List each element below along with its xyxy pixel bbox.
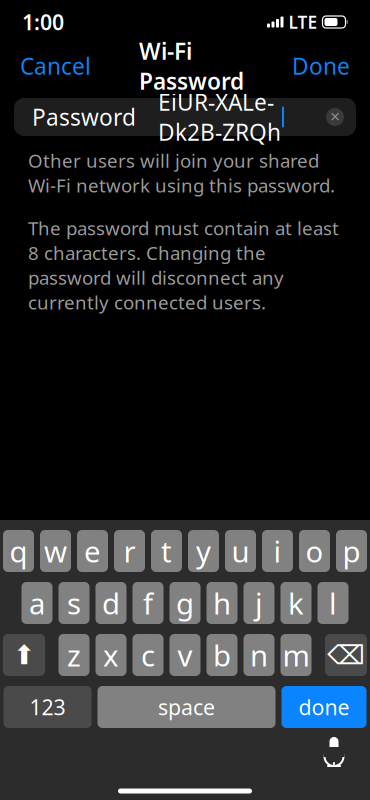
button[interactable]: k: [280, 582, 311, 624]
button[interactable]: d: [95, 582, 126, 624]
button[interactable]: z: [58, 634, 89, 676]
button[interactable]: y: [188, 530, 219, 572]
staticText: z: [67, 635, 81, 674]
button[interactable]: f: [132, 582, 163, 624]
button[interactable]: h: [206, 582, 237, 624]
staticText: The password must contain at least 8 cha…: [28, 216, 339, 315]
staticText: ⌫: [327, 640, 365, 670]
button[interactable]: 123: [3, 686, 91, 728]
staticText: t: [161, 531, 172, 570]
button[interactable]: done: [281, 686, 366, 728]
staticText: u: [231, 531, 249, 570]
staticText: y: [196, 531, 211, 570]
button[interactable]: q: [3, 530, 34, 572]
staticText: m: [282, 635, 309, 674]
staticText: Done: [292, 51, 350, 81]
staticText: k: [288, 583, 304, 622]
button[interactable]: m: [280, 634, 311, 676]
button[interactable]: s: [58, 582, 89, 624]
button[interactable]: l: [317, 582, 348, 624]
staticText: e: [84, 531, 101, 570]
staticText: c: [141, 635, 155, 674]
staticText: ✕: [329, 109, 340, 124]
staticText: q: [9, 531, 27, 570]
staticText: v: [177, 635, 192, 674]
staticText: space: [158, 693, 215, 721]
staticText: LTE: [288, 10, 317, 33]
staticText: ⬆: [13, 640, 35, 670]
button[interactable]: Shift: [3, 634, 45, 676]
staticText: 123: [29, 693, 65, 721]
staticText: Password: [32, 102, 136, 132]
staticText: Wi-Fi Password: [139, 36, 244, 96]
staticText: p: [342, 531, 360, 570]
button[interactable]: w: [40, 530, 71, 572]
staticText: f: [143, 583, 153, 622]
button[interactable]: x: [95, 634, 126, 676]
button[interactable]: c: [132, 634, 163, 676]
staticText: EiUR-XALe-Dk2B-ZRQh: [158, 87, 281, 147]
button[interactable]: Delete: [325, 634, 367, 676]
button[interactable]: Done: [276, 43, 366, 89]
staticText: 1:00: [22, 8, 64, 36]
staticText: g: [176, 583, 194, 622]
button[interactable]: Cancel: [4, 43, 107, 89]
staticText: d: [102, 583, 120, 622]
staticText: x: [103, 635, 119, 674]
button[interactable]: i: [262, 530, 293, 572]
button[interactable]: p: [336, 530, 367, 572]
button[interactable]: space: [97, 686, 275, 728]
staticText: done: [298, 693, 349, 721]
staticText: i: [273, 531, 281, 570]
staticText: o: [305, 531, 323, 570]
button[interactable]: n: [243, 634, 274, 676]
staticText: r: [123, 531, 135, 570]
staticText: Cancel: [20, 51, 91, 81]
button[interactable]: r: [114, 530, 145, 572]
staticText: l: [329, 583, 337, 622]
button[interactable]: Clear text: [320, 102, 350, 132]
staticText: s: [67, 583, 81, 622]
button[interactable]: e: [77, 530, 108, 572]
staticText: w: [44, 531, 67, 570]
staticText: a: [29, 583, 45, 622]
button[interactable]: a: [21, 582, 52, 624]
staticText: h: [213, 583, 231, 622]
button[interactable]: Dictation: [312, 734, 356, 770]
button[interactable]: t: [151, 530, 182, 572]
staticText: j: [255, 583, 263, 622]
button[interactable]: j: [243, 582, 274, 624]
staticText: b: [213, 635, 231, 674]
button[interactable]: v: [169, 634, 200, 676]
staticText: n: [250, 635, 268, 674]
button[interactable]: o: [299, 530, 330, 572]
staticText: Other users will join your shared Wi-Fi …: [28, 148, 335, 198]
button[interactable]: u: [225, 530, 256, 572]
button[interactable]: b: [206, 634, 237, 676]
button[interactable]: g: [169, 582, 200, 624]
